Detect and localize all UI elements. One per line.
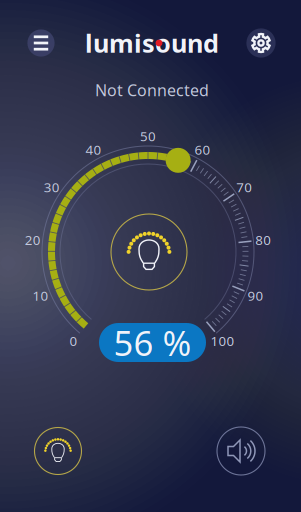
staticText: 80 (255, 231, 271, 249)
staticText: 40 (85, 141, 101, 158)
staticText: 20 (25, 231, 41, 249)
button[interactable]: 56 % (99, 323, 206, 362)
staticText: 90 (248, 287, 264, 304)
staticText: 70 (236, 178, 252, 196)
button[interactable]: Sound (0, 0, 301, 512)
button[interactable]: Menu (0, 0, 301, 512)
staticText: 100 (211, 332, 235, 350)
staticText: 10 (32, 287, 48, 304)
staticText: 30 (44, 178, 60, 196)
staticText: 50 (140, 127, 156, 145)
staticText: Not Connected (95, 79, 209, 101)
staticText: 60 (194, 141, 210, 158)
button[interactable]: Light (0, 0, 301, 512)
staticText: lumisound (85, 26, 219, 60)
staticText: 56 % (113, 319, 191, 365)
staticText: 0 (69, 332, 77, 350)
button[interactable]: Settings (0, 0, 301, 512)
